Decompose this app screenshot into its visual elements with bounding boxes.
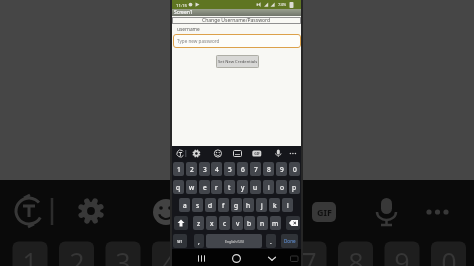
button[interactable]	[192, 251, 206, 264]
staticText: 1	[177, 165, 181, 174]
staticText: !#1	[177, 239, 183, 244]
button[interactable]: 3	[199, 162, 210, 176]
button[interactable]	[172, 148, 301, 160]
staticText: .	[270, 237, 272, 246]
button[interactable]: a	[179, 198, 190, 212]
staticText: c	[223, 219, 227, 228]
staticText: 74%	[278, 2, 287, 8]
button[interactable]: n	[257, 216, 268, 230]
button[interactable]: y	[237, 180, 248, 194]
button[interactable]: v	[232, 216, 243, 230]
staticText: i	[268, 183, 270, 192]
staticText: Done	[284, 238, 296, 244]
button[interactable]: 9	[276, 162, 287, 176]
button[interactable]: i	[263, 180, 274, 194]
button[interactable]: c	[219, 216, 230, 230]
staticText: 6	[255, 244, 271, 266]
staticText: English (US)	[225, 239, 244, 244]
button[interactable]: z	[193, 216, 204, 230]
button[interactable]: ,	[194, 234, 204, 248]
button[interactable]: Type new password	[173, 34, 301, 48]
staticText: 1	[22, 244, 38, 266]
button[interactable]: Done	[281, 234, 298, 248]
staticText: GIF	[254, 151, 260, 156]
button[interactable]	[264, 251, 280, 264]
staticText: 9	[394, 244, 410, 266]
staticText: Set New Credentials	[218, 59, 258, 65]
staticText: 3	[115, 244, 131, 266]
staticText: j	[261, 201, 263, 210]
staticText: GIF	[317, 206, 332, 218]
staticText: a	[183, 201, 187, 210]
button[interactable]: r	[211, 180, 222, 194]
staticText: g	[234, 201, 239, 210]
staticText: 5	[228, 165, 232, 174]
button[interactable]: d	[205, 198, 216, 212]
staticText: Change Username/Password	[202, 17, 271, 24]
button[interactable]	[229, 251, 244, 264]
staticText: r	[215, 183, 218, 192]
button[interactable]: 6	[237, 162, 248, 176]
staticText: Screen1	[174, 9, 193, 16]
button[interactable]: w	[186, 180, 197, 194]
button[interactable]: x	[206, 216, 217, 230]
button[interactable]: English (US)	[206, 234, 262, 248]
staticText: y	[241, 183, 245, 192]
button[interactable]: j	[256, 198, 267, 212]
button[interactable]: 7	[250, 162, 261, 176]
button[interactable]: b	[244, 216, 255, 230]
staticText: x	[210, 219, 214, 228]
button[interactable]: m	[270, 216, 281, 230]
button[interactable]: 1	[173, 162, 184, 176]
button[interactable]: !#1	[173, 234, 187, 248]
staticText: 5	[208, 244, 224, 266]
staticText: l	[287, 201, 289, 210]
button[interactable]: 5	[224, 162, 235, 176]
button[interactable]	[286, 216, 300, 230]
button[interactable]: Set New Credentials	[216, 55, 259, 68]
button[interactable]: q	[173, 180, 184, 194]
button[interactable]: u	[250, 180, 261, 194]
button[interactable]: l	[282, 198, 293, 212]
button[interactable]	[174, 216, 188, 230]
button[interactable]: h	[243, 198, 254, 212]
button[interactable]: .	[266, 234, 276, 248]
button[interactable]: s	[192, 198, 203, 212]
staticText: 7	[254, 165, 258, 174]
staticText: Type new password	[177, 38, 220, 44]
staticText: u	[253, 183, 258, 192]
button[interactable]: 0	[289, 162, 300, 176]
staticText: 0	[441, 244, 457, 266]
button[interactable]: t	[224, 180, 235, 194]
staticText: 0	[293, 165, 297, 174]
button[interactable]: o	[276, 180, 287, 194]
staticText: v	[236, 219, 240, 228]
staticText: 2	[69, 244, 85, 266]
staticText: h	[246, 201, 251, 210]
button[interactable]: f	[218, 198, 229, 212]
staticText: 3	[203, 165, 207, 174]
staticText: 6	[241, 165, 245, 174]
staticText: d	[208, 201, 213, 210]
staticText: 8	[267, 165, 271, 174]
button[interactable]: g	[231, 198, 242, 212]
staticText: 8	[348, 244, 364, 266]
staticText: k	[273, 201, 277, 210]
button[interactable]: 8	[263, 162, 274, 176]
button[interactable]: k	[269, 198, 280, 212]
staticText: 4	[162, 244, 178, 266]
staticText: ,	[198, 237, 200, 246]
button[interactable]: 2	[186, 162, 197, 176]
staticText: 9	[280, 165, 284, 174]
staticText: b	[247, 219, 252, 228]
staticText: 11:15	[176, 2, 187, 8]
staticText: 4	[215, 165, 219, 174]
staticText: o	[280, 183, 284, 192]
staticText: f	[222, 201, 225, 210]
button[interactable]: e	[199, 180, 210, 194]
staticText: p	[292, 183, 297, 192]
staticText: 7	[301, 244, 317, 266]
button[interactable]: 4	[211, 162, 222, 176]
staticText: z	[197, 219, 201, 228]
button[interactable]: p	[289, 180, 300, 194]
